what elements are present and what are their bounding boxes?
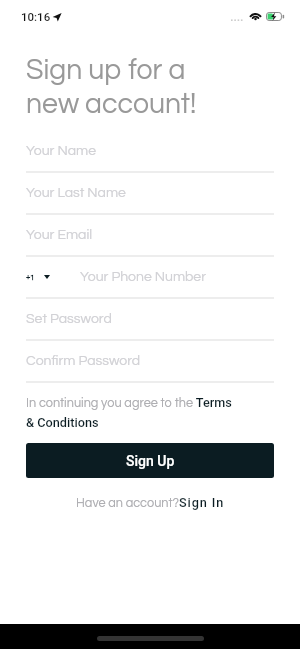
- staticText: Sign Up: [126, 453, 175, 469]
- staticText: Your Last Name: [26, 186, 126, 200]
- button[interactable]: Your Name: [0, 131, 300, 173]
- staticText: +1: [26, 273, 35, 282]
- staticText: 10:16: [21, 10, 51, 23]
- staticText: Confirm Password: [26, 354, 141, 368]
- staticText: Your Email: [26, 228, 93, 242]
- staticText: Sign up for a new account!: [26, 56, 197, 119]
- button[interactable]: Your Last Name: [0, 173, 300, 215]
- staticText: Set Password: [26, 312, 112, 326]
- button[interactable]: Confirm Password: [0, 341, 300, 383]
- button[interactable]: Set Password: [0, 299, 300, 341]
- button[interactable]: Have an account?Sign In: [76, 495, 225, 510]
- button[interactable]: Sign Up: [26, 443, 274, 478]
- other: Country code: [44, 275, 50, 279]
- staticText: Your Name: [26, 144, 96, 158]
- staticText: In continuing you agree to the Terms & C…: [26, 395, 232, 430]
- staticText: Your Phone Number: [80, 270, 206, 284]
- button[interactable]: +1: [0, 257, 300, 299]
- button[interactable]: Your Email: [0, 215, 300, 257]
